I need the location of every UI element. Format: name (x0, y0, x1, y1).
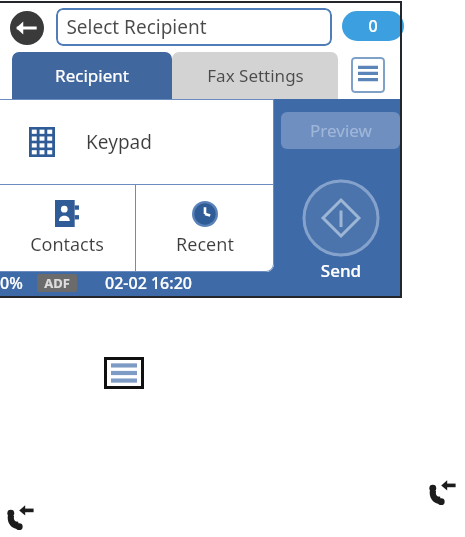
staticText: Fax Settings (207, 64, 304, 87)
button[interactable]: Preview (281, 112, 400, 149)
button[interactable]: Keypad (0, 99, 274, 184)
button[interactable]: Recent (136, 185, 274, 272)
staticText: Recipient (55, 64, 129, 87)
button[interactable]: Menu (104, 357, 144, 389)
staticText: ADF (44, 274, 70, 292)
staticText: Keypad (86, 129, 152, 155)
button[interactable]: Contacts (0, 185, 135, 272)
staticText: Select Recipient (66, 14, 207, 40)
button[interactable]: 0 (342, 11, 404, 41)
staticText: Preview (310, 119, 372, 142)
button[interactable]: Menu (351, 57, 385, 93)
staticText: 0% (0, 272, 23, 294)
staticText: Contacts (30, 232, 104, 257)
staticText: 02-02 16:20 (105, 272, 192, 294)
other: Incoming call (6, 502, 36, 530)
staticText: Send (302, 259, 380, 282)
button[interactable]: Send (302, 179, 380, 257)
staticText: Recent (176, 232, 234, 257)
button[interactable]: Recipient (12, 52, 172, 99)
button[interactable]: Select Recipient (56, 8, 332, 46)
button[interactable]: Back (10, 11, 44, 45)
button[interactable]: Fax Settings (172, 52, 338, 99)
other: Incoming call (428, 477, 458, 505)
staticText: 0 (368, 15, 378, 37)
